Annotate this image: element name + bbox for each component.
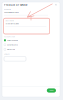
staticText: Consulting services bbox=[4, 11, 19, 14]
staticText: Monthly retainer bbox=[5, 22, 19, 25]
staticText: Other income bbox=[7, 44, 18, 46]
staticText: Sales revenue bbox=[7, 39, 18, 41]
button[interactable]: Save bbox=[47, 88, 56, 93]
button[interactable]: Other income bbox=[4, 43, 28, 46]
staticText: Deferred bbox=[7, 48, 15, 50]
staticText: Save bbox=[49, 89, 53, 91]
staticText: Description bbox=[5, 20, 14, 22]
button[interactable]: Deferred bbox=[4, 48, 28, 51]
staticText: Account type bbox=[4, 36, 15, 38]
staticText: Product or service bbox=[4, 3, 27, 7]
button[interactable]: Close bbox=[55, 4, 57, 6]
staticText: Amount bbox=[4, 53, 10, 55]
button[interactable]: Sales revenue bbox=[4, 39, 28, 42]
staticText: Item name bbox=[4, 8, 11, 10]
